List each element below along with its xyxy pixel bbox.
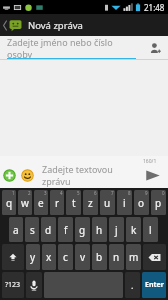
staticText: g	[79, 223, 86, 237]
button[interactable]: i	[117, 190, 132, 215]
staticText: 8	[128, 190, 131, 196]
button[interactable]: t	[66, 190, 81, 215]
staticText: 1	[12, 190, 15, 196]
staticText: 2	[28, 190, 31, 196]
button[interactable]: Voice input	[26, 272, 42, 298]
staticText: e	[38, 196, 44, 210]
staticText: Nová zpráva	[28, 19, 83, 32]
button[interactable]: v	[75, 244, 90, 270]
staticText: 21:48	[144, 2, 165, 13]
staticText: u	[104, 196, 111, 210]
button[interactable]: q	[2, 190, 16, 215]
button[interactable]: c	[58, 244, 73, 270]
staticText: d	[45, 223, 52, 237]
staticText: f	[64, 223, 68, 237]
staticText: o	[138, 196, 145, 210]
button[interactable]: n	[109, 244, 124, 270]
button[interactable]: k	[126, 217, 141, 242]
staticText: m	[129, 250, 139, 264]
button[interactable]: s	[25, 217, 39, 242]
staticText: Zadejte jméno nebo číslo osoby	[7, 36, 136, 60]
button[interactable]: Shift	[2, 244, 24, 270]
button[interactable]: ?123	[2, 272, 24, 298]
button[interactable]: Add recipient	[142, 36, 168, 60]
staticText: a	[13, 223, 19, 237]
staticText: s	[30, 223, 35, 237]
button[interactable]: f	[58, 217, 73, 242]
staticText: i	[123, 196, 126, 210]
button[interactable]: o	[134, 190, 149, 215]
staticText: Zadejte textovou zprávu	[42, 163, 138, 187]
staticText: v	[80, 250, 86, 264]
staticText: t	[72, 196, 76, 210]
button[interactable]: w	[18, 190, 32, 215]
staticText: ?123	[5, 280, 21, 290]
button[interactable]: Attach	[0, 162, 18, 188]
button[interactable]: Backspace	[143, 244, 166, 270]
staticText: Enter	[145, 280, 164, 290]
button[interactable]: Insert smiley	[18, 162, 36, 188]
button[interactable]: l	[143, 217, 158, 242]
button[interactable]: r	[50, 190, 64, 215]
staticText: w	[21, 196, 29, 210]
button[interactable]: Enter	[142, 272, 166, 298]
button[interactable]: b	[92, 244, 107, 270]
staticText: 5	[77, 190, 80, 196]
staticText: k	[131, 223, 137, 237]
staticText: j	[115, 223, 118, 237]
button[interactable]: Send	[138, 162, 168, 188]
staticText: 0	[162, 190, 165, 196]
button[interactable]: d	[41, 217, 56, 242]
staticText: 7	[111, 190, 114, 196]
button[interactable]: Back	[0, 14, 25, 36]
staticText: 4	[60, 190, 63, 196]
button[interactable]: a	[9, 217, 23, 242]
staticText: .	[131, 279, 134, 291]
staticText: 3	[44, 190, 47, 196]
button[interactable]: u	[100, 190, 115, 215]
staticText: h	[96, 223, 103, 237]
button[interactable]: z	[83, 190, 98, 215]
button[interactable]: x	[42, 244, 56, 270]
staticText: x	[46, 250, 52, 264]
button[interactable]: j	[109, 217, 124, 242]
staticText: p	[155, 196, 162, 210]
button[interactable]: e	[34, 190, 48, 215]
staticText: r	[55, 196, 60, 210]
button[interactable]: h	[92, 217, 107, 242]
staticText: b	[96, 250, 103, 264]
button[interactable]: m	[126, 244, 141, 270]
staticText: l	[149, 223, 152, 237]
button[interactable]: Zadejte textovou zprávu	[36, 162, 138, 188]
staticText: q	[6, 196, 13, 210]
staticText: 9	[145, 190, 148, 196]
button[interactable]: y	[26, 244, 40, 270]
staticText: n	[113, 250, 120, 264]
staticText: c	[63, 250, 68, 264]
button[interactable]: Zadejte jméno nebo číslo osoby	[0, 36, 142, 60]
button[interactable]: .	[125, 272, 140, 298]
staticText: 160/1	[143, 158, 157, 165]
staticText: 6	[94, 190, 97, 196]
staticText: y	[30, 250, 36, 264]
staticText: z	[88, 196, 93, 210]
button[interactable]: g	[75, 217, 90, 242]
button[interactable]: p	[151, 190, 166, 215]
